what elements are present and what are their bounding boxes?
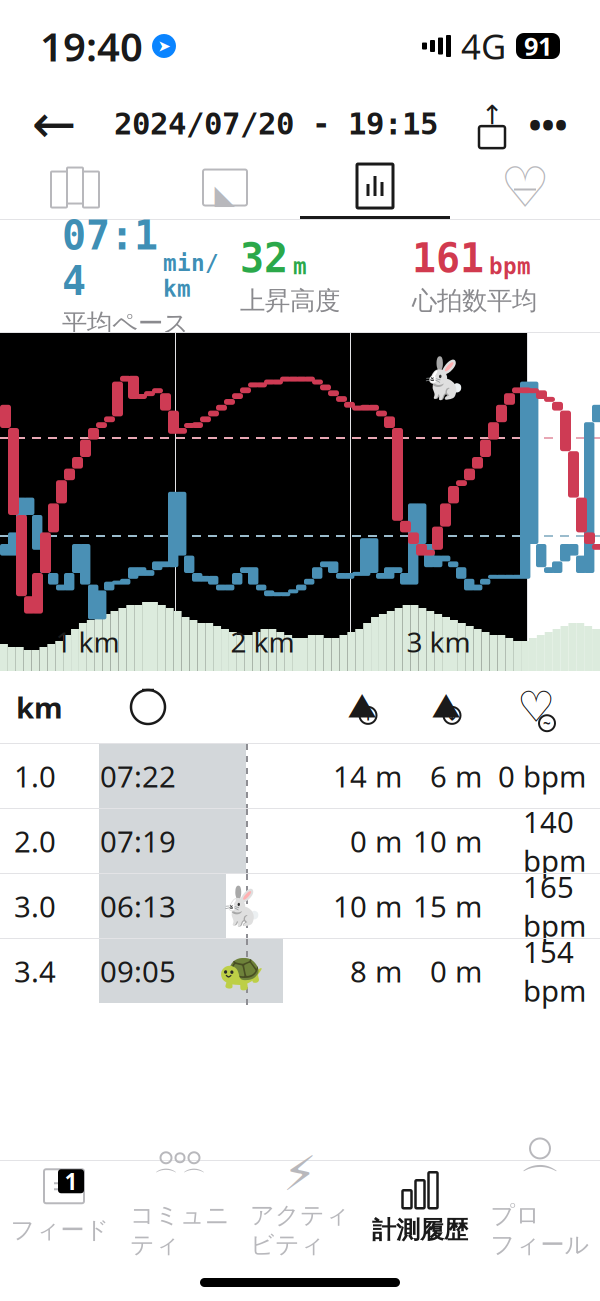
staticText: ↑	[481, 100, 503, 130]
staticText: ⌒	[520, 1159, 560, 1209]
staticText: ⚡︎	[283, 1146, 317, 1201]
staticText: フィード	[10, 1215, 109, 1245]
staticText: ←	[31, 94, 76, 154]
staticText: 計測履歴	[372, 1215, 468, 1245]
staticText: アクティビティ	[250, 1200, 350, 1259]
staticText: 1 km	[55, 623, 119, 660]
staticText: 140 bpm	[523, 802, 586, 880]
staticText: ⌒	[154, 1165, 178, 1195]
staticText: ~	[543, 714, 551, 732]
staticText: コミュニティ	[130, 1200, 230, 1259]
button[interactable]: Share	[466, 95, 518, 153]
staticText: 32	[240, 236, 288, 281]
staticText: 154 bpm	[523, 932, 586, 1010]
staticText: 🐇	[218, 885, 264, 927]
staticText: ⛰	[347, 690, 376, 724]
staticText: 165 bpm	[523, 867, 586, 945]
staticText: 🐢	[218, 950, 264, 992]
staticText: 0 m	[430, 951, 482, 990]
staticText: 心拍数平均	[412, 285, 537, 316]
staticText: 07:19	[100, 821, 176, 860]
staticText: 2.0	[14, 821, 56, 860]
staticText: 2 km	[230, 623, 294, 660]
button[interactable]: ⚡︎	[240, 1162, 360, 1250]
button[interactable]: ⌒	[480, 1162, 600, 1250]
staticText: 19:40	[40, 19, 143, 72]
staticText: 161	[412, 236, 484, 281]
staticText: 91	[524, 29, 552, 63]
staticText: ↑	[362, 707, 374, 724]
staticText: 06:13	[100, 886, 176, 925]
button[interactable]: ⌒	[120, 1162, 240, 1250]
staticText: •••	[528, 101, 567, 147]
staticText: ◣	[214, 179, 235, 210]
button[interactable]: Back	[22, 95, 86, 153]
staticText: 3.4	[14, 951, 56, 990]
staticText: min/km	[163, 250, 219, 302]
staticText: ⛰	[431, 690, 460, 724]
staticText: 09:05	[100, 951, 176, 990]
staticText: 6 m	[430, 756, 482, 795]
staticText: 1	[64, 1166, 77, 1196]
staticText: 14 m	[333, 756, 402, 795]
staticText: km	[16, 687, 63, 726]
staticText: 4G	[461, 23, 506, 69]
staticText: m	[293, 253, 307, 279]
button[interactable]: Charts	[300, 156, 450, 219]
staticText: 07:14	[62, 213, 158, 304]
staticText: 1.0	[14, 756, 56, 795]
button[interactable]: More options	[518, 95, 578, 153]
staticText: 2024/07/20 - 19:15	[114, 107, 438, 141]
staticText: 平均ペース	[62, 308, 189, 339]
staticText: ⌒	[182, 1165, 206, 1195]
staticText: bpm	[489, 253, 531, 279]
staticText: 07:22	[100, 756, 176, 795]
staticText: ♡	[517, 683, 555, 731]
staticText: 0 m	[350, 821, 402, 860]
button[interactable]: 1	[0, 1162, 120, 1250]
staticText: 3 km	[406, 623, 470, 660]
staticText: プロフィール	[490, 1200, 589, 1259]
staticText: 🐇	[418, 355, 468, 401]
staticText: 3.0	[14, 886, 56, 925]
staticText: 15 m	[413, 886, 482, 925]
button[interactable]: 計測履歴	[360, 1162, 480, 1250]
staticText: ♡	[500, 156, 550, 219]
staticText: 8 m	[350, 951, 402, 990]
staticText: ➤	[157, 37, 170, 55]
staticText: 10 m	[413, 821, 482, 860]
staticText: ↓	[446, 707, 458, 724]
button[interactable]: Heart rate	[450, 156, 600, 218]
staticText: 0 bpm	[498, 756, 586, 795]
staticText: 上昇高度	[240, 285, 340, 316]
staticText: 10 m	[333, 886, 402, 925]
button[interactable]: Photos	[150, 156, 300, 218]
button[interactable]: Map	[0, 156, 150, 218]
